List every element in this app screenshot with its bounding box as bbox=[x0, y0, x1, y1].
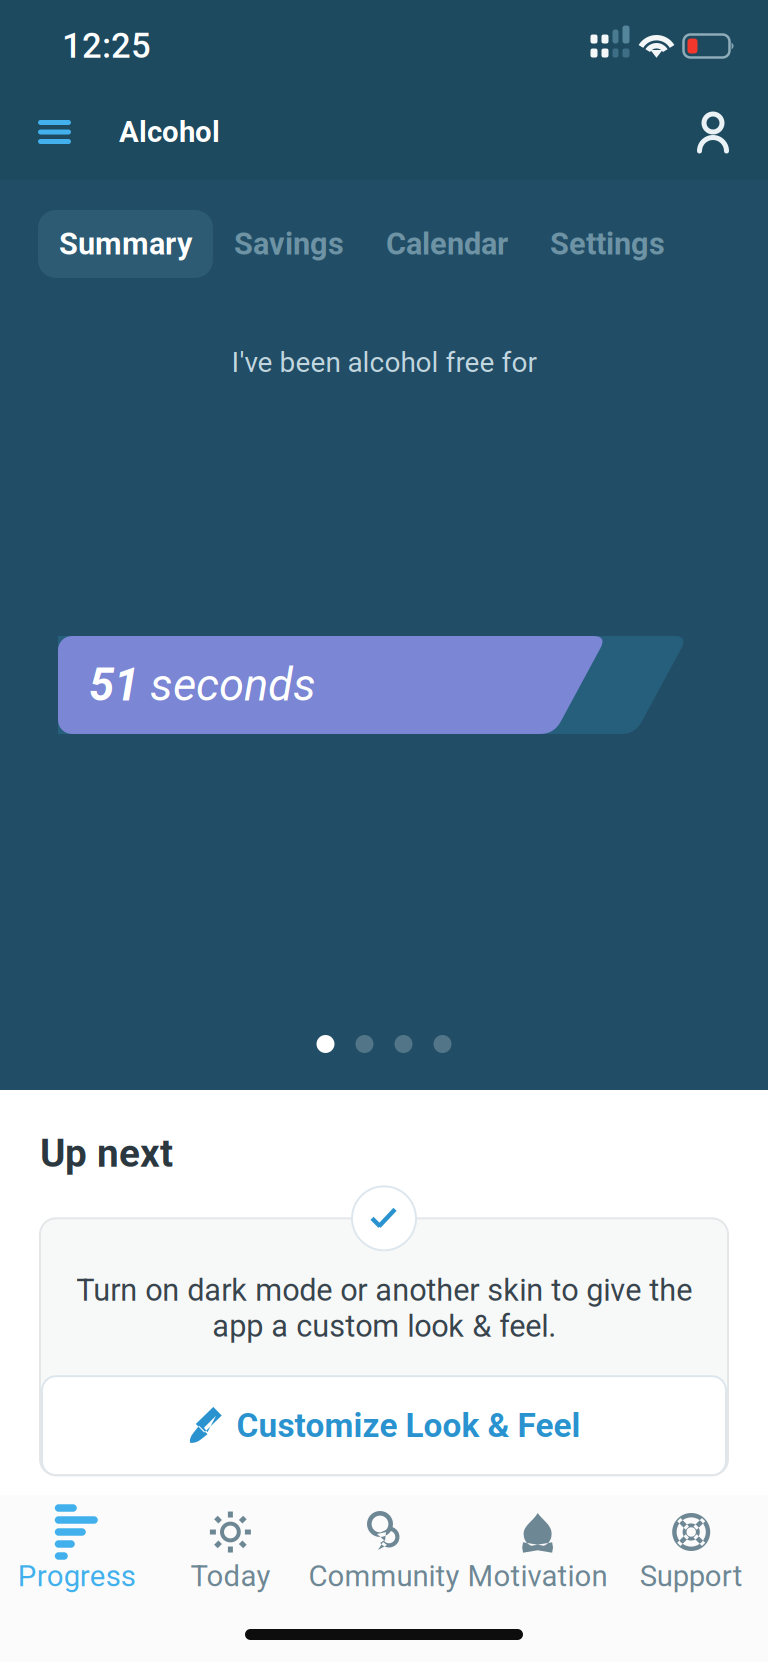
staticText: Today bbox=[190, 1559, 270, 1593]
staticText: 51 bbox=[89, 658, 150, 711]
staticText: Summary bbox=[59, 226, 192, 262]
button[interactable]: Community bbox=[307, 1495, 461, 1593]
button[interactable]: Customize Look & Feel bbox=[42, 1376, 726, 1475]
staticText: 12:25 bbox=[62, 26, 151, 66]
button[interactable]: Account bbox=[680, 101, 746, 163]
staticText: Motivation bbox=[468, 1559, 608, 1593]
staticText: Savings bbox=[234, 226, 344, 262]
button[interactable]: Calendar bbox=[365, 210, 529, 278]
button[interactable]: Motivation bbox=[461, 1495, 614, 1593]
button[interactable]: Support bbox=[614, 1495, 768, 1593]
button[interactable]: Savings bbox=[213, 210, 365, 278]
staticText: Alcohol bbox=[119, 115, 220, 149]
staticText: Support bbox=[640, 1559, 743, 1593]
staticText: seconds bbox=[150, 658, 316, 711]
staticText: Progress bbox=[18, 1559, 136, 1593]
button[interactable]: Today bbox=[154, 1495, 307, 1593]
button[interactable]: Summary bbox=[38, 210, 213, 278]
staticText: Settings bbox=[550, 226, 665, 262]
button[interactable]: Progress bbox=[0, 1495, 154, 1593]
staticText: Up next bbox=[40, 1131, 173, 1176]
button[interactable]: Settings bbox=[529, 210, 686, 278]
staticText: Community bbox=[308, 1559, 459, 1593]
staticText: Customize Look & Feel bbox=[236, 1406, 580, 1445]
staticText: Turn on dark mode or another skin to giv… bbox=[76, 1272, 692, 1344]
staticText: I've been alcohol free for bbox=[231, 346, 536, 379]
button[interactable]: Menu bbox=[19, 100, 90, 164]
staticText: Calendar bbox=[386, 226, 508, 262]
